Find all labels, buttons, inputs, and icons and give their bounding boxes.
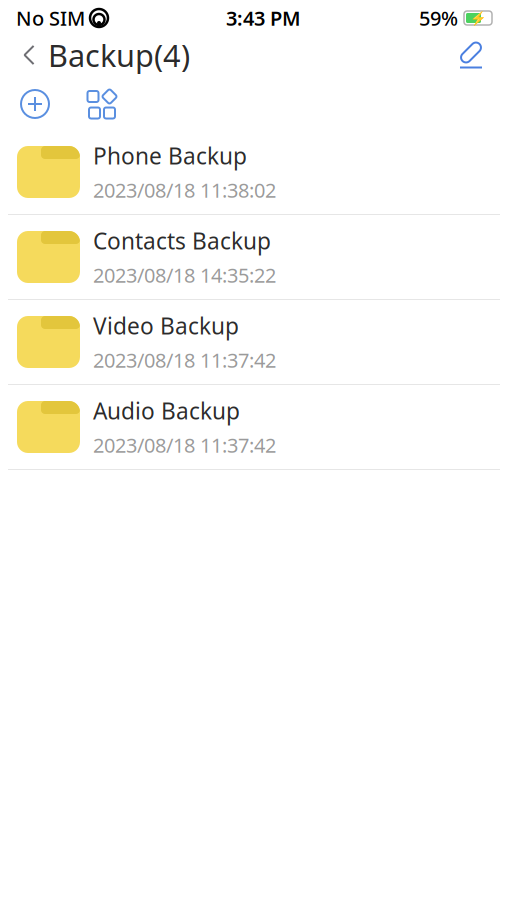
staticText: 2023/08/18 14:35:22 — [93, 262, 276, 288]
staticText: 3:43 PM — [226, 5, 301, 31]
staticText: Video Backup — [93, 311, 239, 341]
staticText: Phone Backup — [93, 141, 247, 171]
staticText: 2023/08/18 11:37:42 — [93, 432, 276, 458]
button[interactable]: Contacts Backup — [0, 215, 507, 300]
staticText: 2023/08/18 11:37:42 — [93, 347, 276, 373]
button[interactable]: Audio Backup — [0, 385, 507, 470]
button[interactable]: Edit — [456, 40, 507, 70]
staticText: 59% — [419, 5, 458, 31]
button[interactable]: Video Backup — [0, 300, 507, 385]
button[interactable]: Grid view — [51, 89, 117, 119]
staticText: No SIM — [16, 5, 85, 31]
staticText: Audio Backup — [93, 396, 240, 426]
button[interactable]: Phone Backup — [0, 130, 507, 215]
button[interactable]: Backup(4) — [0, 29, 190, 81]
staticText: Backup(4) — [48, 35, 190, 75]
button[interactable]: Add backup — [0, 88, 51, 120]
staticText: ⚡ — [469, 10, 486, 26]
staticText: 2023/08/18 11:38:02 — [93, 177, 276, 203]
staticText: Contacts Backup — [93, 226, 271, 256]
